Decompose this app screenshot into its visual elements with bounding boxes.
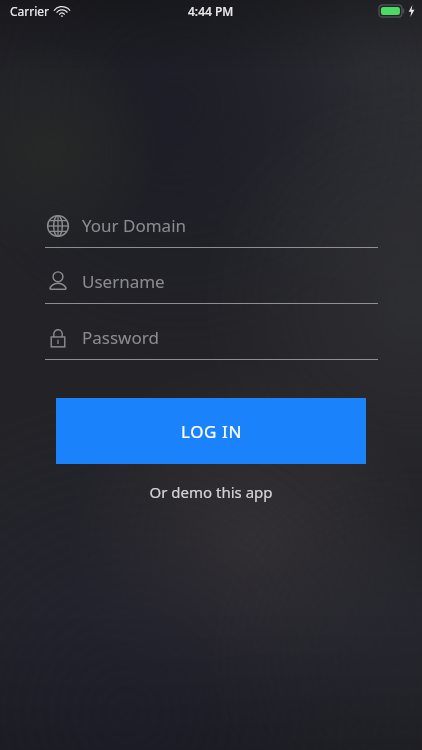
other: Your Domain bbox=[45, 213, 71, 239]
staticText: Your Domain bbox=[82, 214, 187, 237]
staticText: Username bbox=[82, 270, 165, 293]
staticText: Carrier bbox=[10, 3, 50, 19]
other: Password bbox=[45, 325, 71, 351]
button[interactable]: Username bbox=[45, 264, 378, 304]
button[interactable]: Password bbox=[45, 320, 378, 360]
button[interactable]: Or demo this app bbox=[0, 482, 422, 502]
staticText: Or demo this app bbox=[149, 482, 273, 502]
staticText: 4:44 PM bbox=[188, 3, 234, 19]
button[interactable]: Your Domain bbox=[45, 208, 378, 248]
staticText: LOG IN bbox=[181, 420, 242, 443]
other: Username bbox=[45, 269, 71, 295]
staticText: Password bbox=[82, 326, 159, 349]
button[interactable]: LOG IN bbox=[56, 398, 366, 464]
